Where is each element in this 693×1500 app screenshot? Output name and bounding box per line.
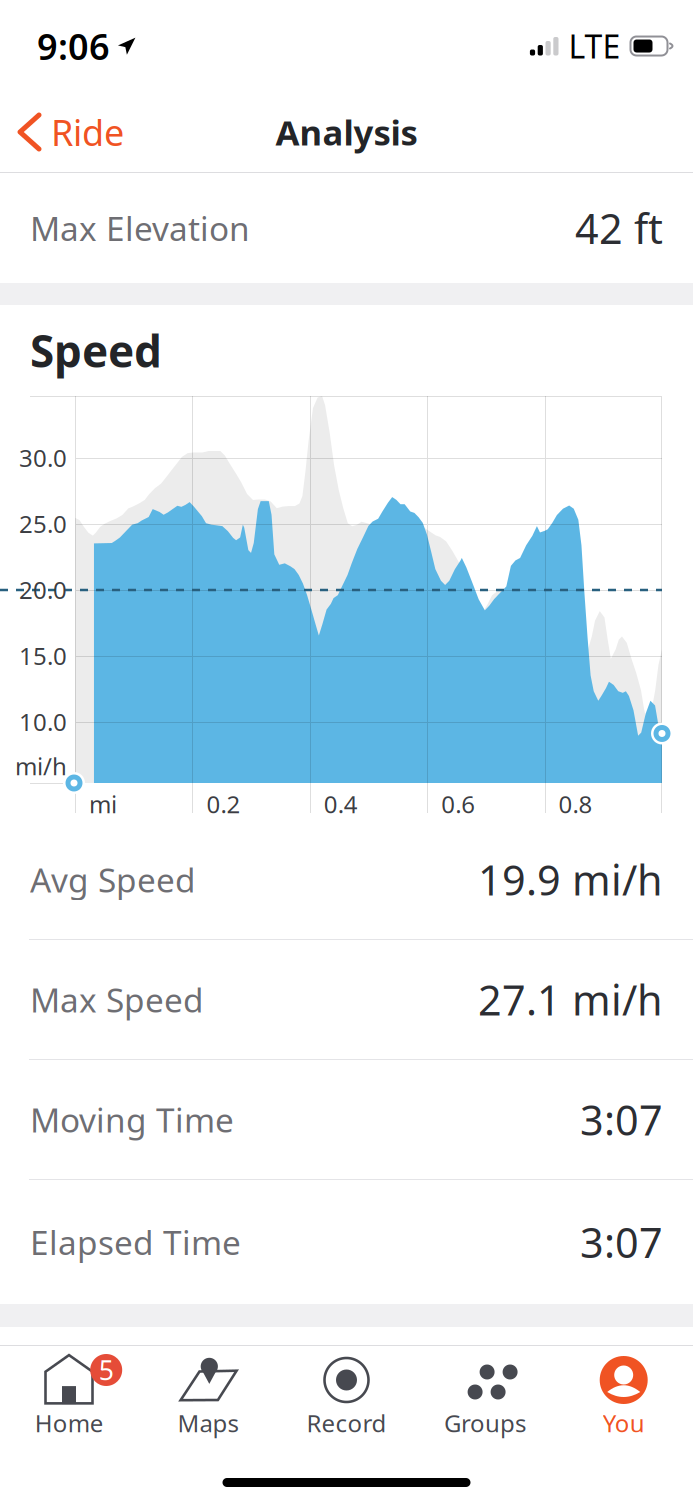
staticText: 3:07 (580, 1092, 663, 1147)
staticText: Record (306, 1407, 386, 1439)
staticText: 10.0 (19, 706, 67, 738)
staticText: 25.0 (19, 508, 67, 540)
staticText: 0.6 (441, 788, 475, 820)
staticText: Maps (177, 1407, 238, 1439)
staticText: 3:07 (580, 1215, 663, 1269)
button[interactable]: Groups (416, 1346, 554, 1440)
staticText: 42 ft (575, 201, 663, 255)
staticText: Max Elevation (30, 206, 250, 250)
staticText: Max Speed (30, 977, 204, 1022)
staticText: 19.9 mi/h (478, 852, 663, 907)
staticText: Home (35, 1407, 104, 1439)
staticText: mi/h (15, 750, 67, 782)
button[interactable]: 5 (0, 1346, 139, 1440)
staticText: 0.4 (324, 788, 358, 820)
staticText: 0.2 (206, 788, 240, 820)
staticText: Ride (51, 108, 124, 156)
staticText: 5 (99, 1352, 114, 1388)
staticText: 30.0 (19, 442, 67, 474)
staticText: 0.8 (559, 788, 593, 820)
button[interactable]: Maps (139, 1346, 277, 1440)
button[interactable]: Record (277, 1346, 416, 1440)
staticText: 9:06 (37, 22, 110, 70)
staticText: 15.0 (19, 640, 67, 672)
button[interactable]: Ride (0, 92, 140, 172)
staticText: mi (89, 788, 117, 820)
staticText: Elapsed Time (30, 1220, 241, 1264)
staticText: Moving Time (30, 1097, 234, 1142)
staticText: LTE (568, 25, 620, 67)
staticText: 20.0 (19, 574, 67, 606)
staticText: Speed (30, 321, 162, 380)
staticText: Groups (444, 1407, 526, 1439)
button[interactable]: You (554, 1346, 693, 1440)
staticText: You (603, 1407, 645, 1439)
staticText: Analysis (275, 109, 417, 155)
staticText: Avg Speed (30, 857, 196, 902)
staticText: 27.1 mi/h (478, 972, 663, 1027)
